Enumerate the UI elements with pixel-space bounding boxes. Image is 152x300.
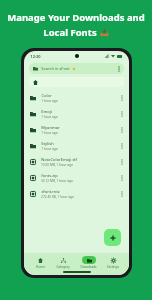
staticText: Downloads bbox=[80, 265, 97, 269]
staticText: 1 hour ago bbox=[41, 99, 58, 103]
staticText: 10.50 MB, 1 hour ago bbox=[41, 163, 73, 167]
button[interactable]: Downloads bbox=[79, 256, 98, 269]
staticText: 1 hour ago bbox=[41, 147, 58, 151]
button[interactable]: Add bbox=[104, 229, 121, 246]
button[interactable]: Category bbox=[55, 256, 71, 269]
staticText: Emoji bbox=[41, 109, 52, 114]
staticText: Category bbox=[56, 265, 70, 269]
button[interactable]: Home bbox=[32, 256, 48, 269]
staticText: Settings bbox=[107, 265, 119, 269]
staticText: Myanmar bbox=[41, 125, 60, 130]
button[interactable]: zfont.mtz bbox=[24, 186, 129, 202]
button[interactable] bbox=[29, 77, 124, 87]
button[interactable]: Stylish bbox=[24, 138, 129, 154]
staticText: zfont.mtz bbox=[41, 189, 60, 194]
staticText: Manage Your Downloads and bbox=[7, 11, 145, 24]
staticText: Stylish bbox=[41, 141, 54, 146]
button[interactable]: Myanmar bbox=[24, 122, 129, 138]
button[interactable]: Settings bbox=[105, 256, 121, 269]
button[interactable]: Search in zFont bbox=[29, 63, 124, 74]
staticText: Color bbox=[41, 93, 52, 98]
button[interactable]: Emoji bbox=[24, 106, 129, 122]
staticText: 12:30 bbox=[30, 54, 41, 59]
staticText: 33.12 MB, 1 hour ago bbox=[41, 179, 73, 183]
staticText: 1 hour ago bbox=[41, 115, 58, 119]
staticText: NotoColorEmoji.ttf bbox=[41, 157, 77, 162]
staticText: fonts.zip bbox=[41, 173, 58, 178]
staticText: 1 hour ago bbox=[41, 131, 58, 135]
button[interactable]: fonts.zip bbox=[24, 170, 129, 186]
staticText: Home bbox=[36, 265, 45, 269]
button[interactable]: Color bbox=[24, 90, 129, 106]
staticText: Local Fonts bbox=[43, 26, 97, 39]
button[interactable]: NotoColorEmoji.ttf bbox=[24, 154, 129, 170]
staticText: 272.45 KB, 1 hour ago bbox=[41, 195, 74, 199]
staticText: Search in zFont bbox=[41, 66, 70, 71]
